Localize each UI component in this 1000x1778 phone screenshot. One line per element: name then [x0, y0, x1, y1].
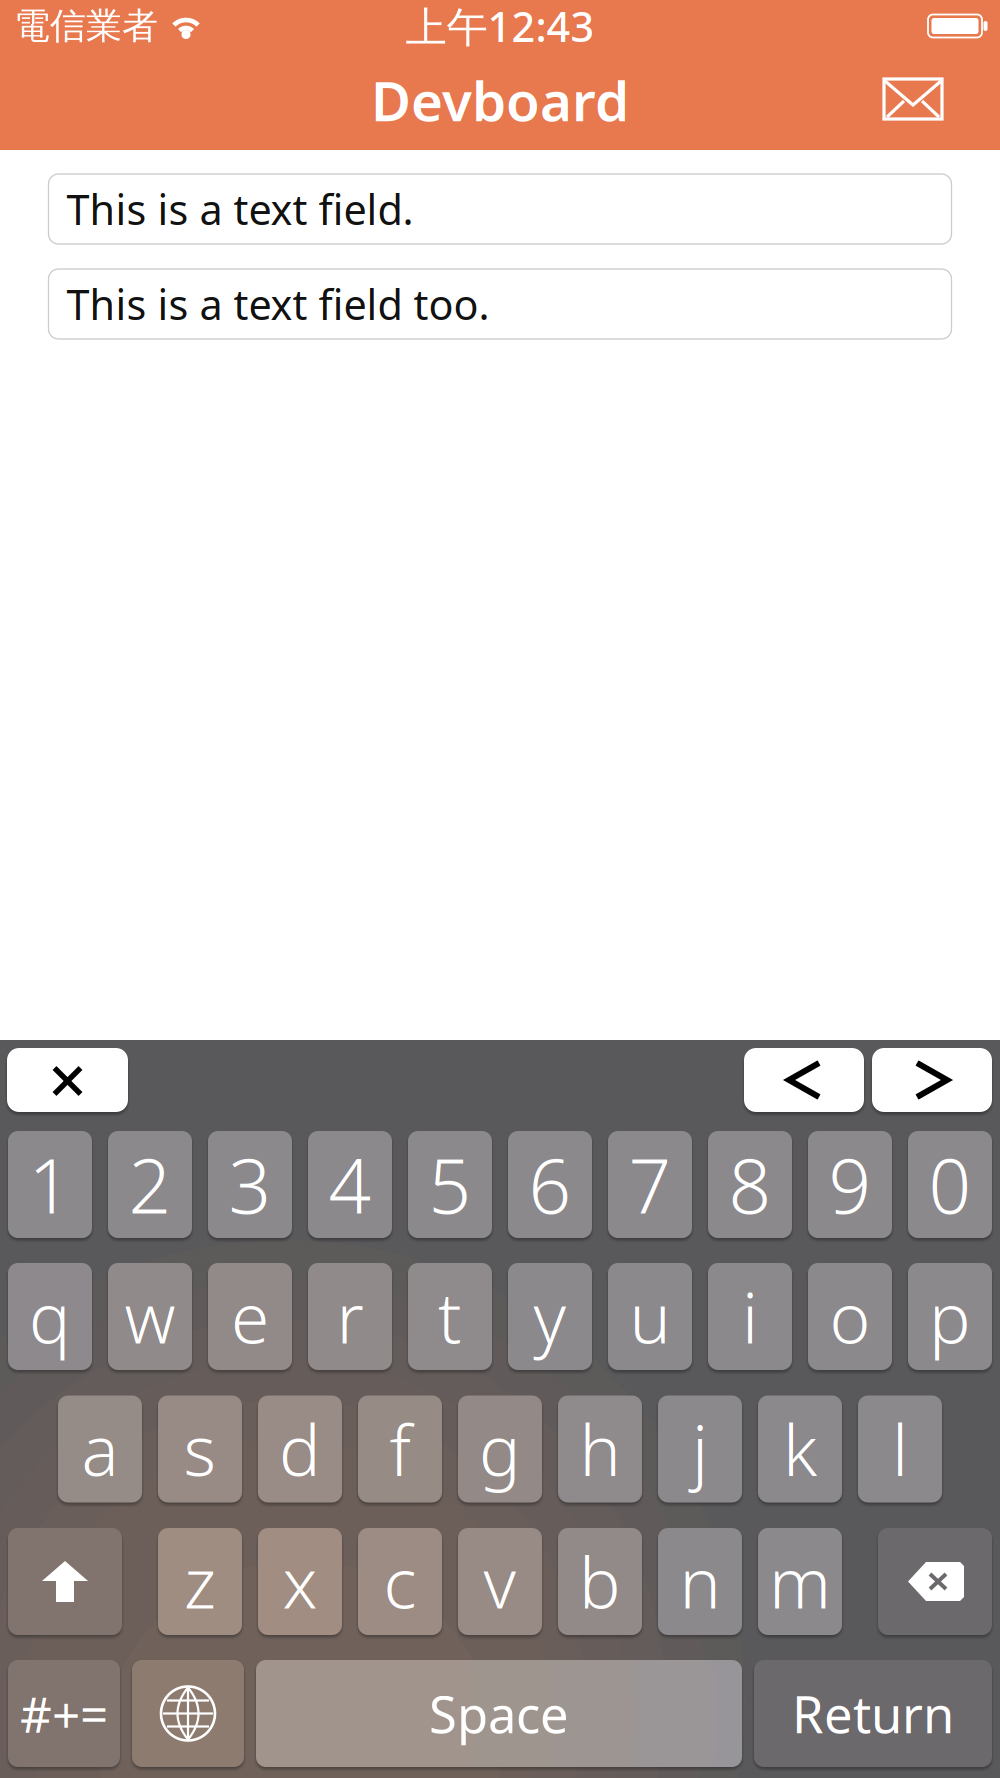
button[interactable]: k	[758, 1395, 842, 1502]
staticText: 6	[528, 1135, 571, 1234]
button[interactable]: 8	[708, 1131, 792, 1238]
button[interactable]: Space	[256, 1660, 742, 1767]
staticText: f	[389, 1403, 410, 1495]
staticText: l	[892, 1403, 908, 1495]
staticText: 電信業者	[14, 4, 158, 48]
button[interactable]: x	[258, 1528, 342, 1635]
button[interactable]: q	[8, 1263, 92, 1370]
staticText: 上午12:43	[405, 0, 594, 53]
button[interactable]: h	[558, 1395, 642, 1502]
button[interactable]: 3	[208, 1131, 292, 1238]
staticText: 1	[28, 1135, 71, 1234]
button[interactable]: i	[708, 1263, 792, 1370]
button[interactable]: s	[158, 1395, 242, 1502]
button[interactable]: j	[658, 1395, 742, 1502]
button[interactable]: 1	[8, 1131, 92, 1238]
button[interactable]: 4	[308, 1131, 392, 1238]
button[interactable]: 2	[108, 1131, 192, 1238]
staticText: e	[231, 1270, 269, 1363]
button[interactable]: This is a text field too.	[48, 269, 951, 339]
staticText: a	[81, 1403, 118, 1495]
button[interactable]: 6	[508, 1131, 592, 1238]
staticText: w	[124, 1270, 175, 1363]
button[interactable]: f	[358, 1395, 442, 1502]
button[interactable]: a	[58, 1395, 142, 1502]
staticText: i	[742, 1270, 758, 1363]
button[interactable]: 0	[908, 1131, 992, 1238]
staticText: d	[279, 1403, 321, 1495]
button[interactable]: y	[508, 1263, 592, 1370]
staticText: s	[183, 1403, 216, 1495]
staticText: b	[579, 1535, 621, 1628]
button[interactable]	[8, 1528, 122, 1635]
button[interactable]	[132, 1660, 244, 1767]
button[interactable]	[7, 1048, 128, 1112]
staticText: o	[829, 1270, 870, 1363]
button[interactable]: n	[658, 1528, 742, 1635]
button[interactable]: b	[558, 1528, 642, 1635]
button[interactable]: e	[208, 1263, 292, 1370]
staticText: 7	[628, 1135, 671, 1234]
button[interactable]: 9	[808, 1131, 892, 1238]
staticText: 5	[428, 1135, 471, 1234]
staticText: t	[438, 1270, 462, 1363]
button[interactable]: This is a text field.	[48, 174, 951, 244]
button[interactable]: t	[408, 1263, 492, 1370]
staticText: 4	[328, 1135, 371, 1234]
staticText: k	[783, 1403, 817, 1495]
button[interactable]	[873, 67, 953, 131]
staticText: j	[692, 1403, 708, 1495]
staticText: Space	[429, 1680, 569, 1747]
staticText: x	[282, 1535, 317, 1628]
staticText: q	[29, 1270, 71, 1363]
staticText: c	[383, 1535, 416, 1628]
button[interactable]: v	[458, 1528, 542, 1635]
button[interactable]: Return	[754, 1660, 992, 1767]
staticText: m	[769, 1535, 831, 1628]
staticText: n	[679, 1535, 720, 1628]
button[interactable]: #+=	[8, 1660, 120, 1767]
staticText: u	[629, 1270, 670, 1363]
staticText: #+=	[20, 1681, 108, 1746]
button[interactable]: g	[458, 1395, 542, 1502]
button[interactable]: r	[308, 1263, 392, 1370]
button[interactable]	[878, 1528, 992, 1635]
button[interactable]: d	[258, 1395, 342, 1502]
staticText: h	[579, 1403, 620, 1495]
button[interactable]: 7	[608, 1131, 692, 1238]
staticText: 2	[128, 1135, 171, 1234]
staticText: g	[479, 1403, 521, 1495]
button[interactable]: u	[608, 1263, 692, 1370]
button[interactable]: w	[108, 1263, 192, 1370]
staticText: 0	[928, 1135, 971, 1234]
button[interactable]: z	[158, 1528, 242, 1635]
staticText: y	[533, 1270, 566, 1363]
button[interactable]: p	[908, 1263, 992, 1370]
staticText: 9	[828, 1135, 871, 1234]
staticText: v	[483, 1535, 516, 1628]
button[interactable]: m	[758, 1528, 842, 1635]
staticText: z	[184, 1535, 216, 1628]
staticText: This is a text field too.	[66, 277, 489, 331]
staticText: Devboard	[371, 64, 629, 136]
button[interactable]	[744, 1048, 864, 1112]
button[interactable]: l	[858, 1395, 942, 1502]
button[interactable]: 5	[408, 1131, 492, 1238]
staticText: 3	[228, 1135, 271, 1234]
button[interactable]: c	[358, 1528, 442, 1635]
staticText: This is a text field.	[66, 182, 413, 236]
staticText: 8	[728, 1135, 771, 1234]
staticText: p	[929, 1270, 971, 1363]
button[interactable]	[872, 1048, 992, 1112]
staticText: Return	[792, 1680, 954, 1747]
button[interactable]: o	[808, 1263, 892, 1370]
staticText: r	[336, 1270, 363, 1363]
